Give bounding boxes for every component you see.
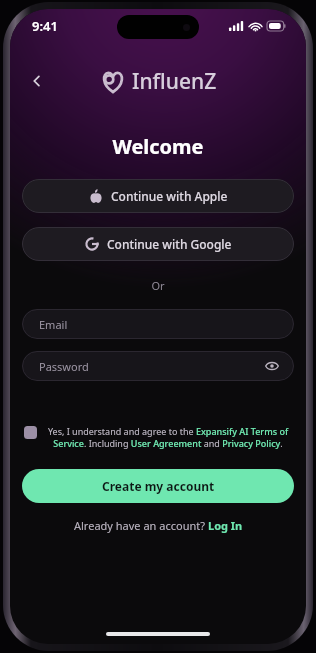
button[interactable]: Email (22, 309, 294, 339)
staticText: Create my account (102, 478, 215, 494)
button[interactable]: Continue with Google (22, 227, 294, 261)
staticText: Already have an account? (74, 518, 208, 533)
staticText: InfluenZ (132, 67, 217, 96)
staticText: Email (39, 317, 68, 332)
staticText: 9:41 (32, 17, 58, 35)
button[interactable]: Yes, I understand and agree to the Expan… (22, 423, 294, 452)
staticText: Continue with Google (107, 236, 232, 252)
staticText: Yes, I understand and agree to the Expan… (44, 425, 292, 450)
button[interactable]: Password (22, 351, 294, 381)
button[interactable]: Back (20, 64, 54, 98)
staticText: Log In (208, 518, 243, 533)
button[interactable]: Continue with Apple (22, 179, 294, 213)
staticText: Or (10, 278, 306, 293)
button[interactable]: Show password (262, 356, 282, 376)
staticText: Welcome (10, 133, 306, 160)
staticText: Password (39, 359, 89, 374)
staticText: Continue with Apple (111, 188, 228, 204)
button[interactable]: Log In (208, 518, 243, 533)
button[interactable]: Create my account (22, 469, 294, 503)
